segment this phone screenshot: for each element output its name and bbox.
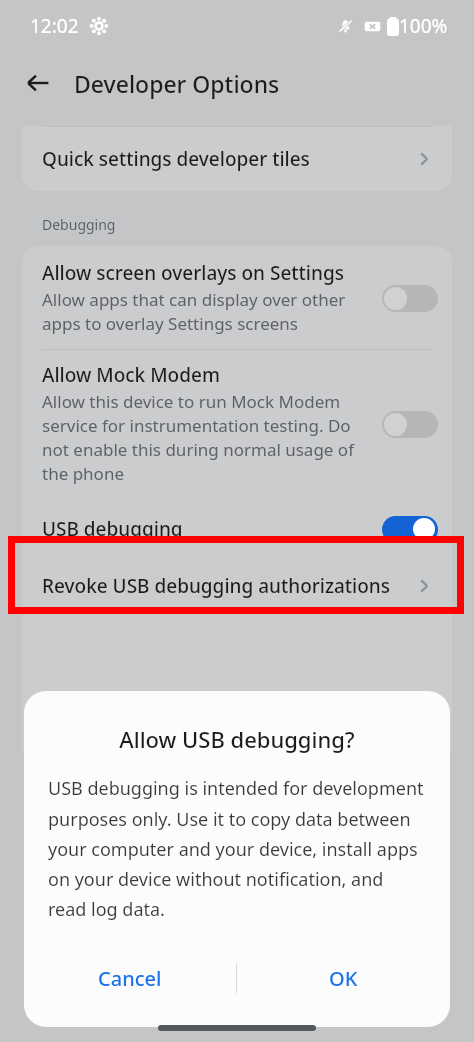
staticText: Cancel — [98, 965, 162, 992]
button[interactable]: Enable view attribute inspection — [22, 704, 452, 752]
button[interactable]: Allow Mock Modem toggle — [382, 410, 438, 438]
button[interactable]: Quick settings developer tiles — [22, 127, 452, 191]
staticText: OK — [329, 965, 358, 992]
button[interactable]: USB debugging toggle — [382, 515, 438, 543]
staticText: Enable view attribute inspection — [42, 715, 382, 741]
button[interactable]: USB debugging — [22, 497, 452, 561]
staticText: Allow apps that can display over other a… — [42, 288, 376, 335]
staticText: USB debugging is intended for developmen… — [48, 776, 426, 921]
staticText: 12:02 — [30, 13, 79, 39]
button[interactable]: Back — [16, 61, 60, 105]
button[interactable]: Allow Mock Modem — [22, 350, 452, 497]
button[interactable]: Allow screen overlays on Settings — [22, 246, 452, 349]
staticText: Allow screen overlays on Settings — [42, 260, 344, 286]
staticText: Quick settings developer tiles — [42, 146, 414, 172]
staticText: Revoke USB debugging authorizations — [42, 573, 414, 599]
staticText: USB debugging — [42, 516, 382, 542]
button[interactable]: Revoke USB debugging authorizations — [22, 561, 452, 611]
button[interactable]: Allow screen overlays toggle — [382, 284, 438, 312]
staticText: Developer Options — [74, 68, 280, 99]
staticText: 100% — [399, 13, 448, 39]
staticText: Allow Mock Modem — [42, 362, 220, 388]
staticText: Allow USB debugging? — [24, 724, 450, 754]
staticText: Debugging — [42, 215, 116, 234]
button[interactable]: OK — [237, 945, 450, 1011]
button[interactable]: Cancel — [24, 945, 236, 1011]
staticText: Allow this device to run Mock Modem serv… — [42, 390, 376, 485]
